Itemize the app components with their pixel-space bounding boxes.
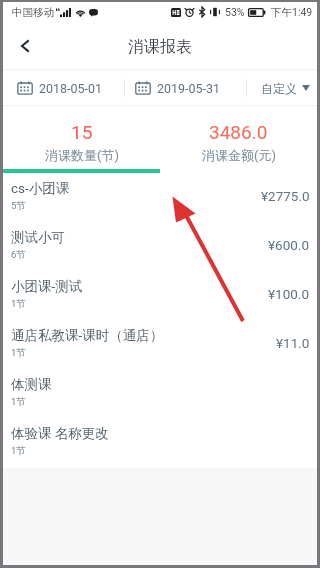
staticText: ¥100.0 [268, 286, 310, 302]
staticText: 3486.0 [209, 121, 268, 143]
staticText: 53% [225, 6, 245, 18]
button[interactable]: 体验课 名称更改 [3, 419, 317, 468]
button[interactable]: 体测课 [3, 370, 317, 419]
button[interactable]: 2019-05-31 [125, 70, 246, 106]
staticText: 2019-05-31 [157, 81, 221, 96]
staticText: 1节 [11, 445, 26, 457]
staticText: 体测课 [11, 376, 52, 393]
staticText: 下午1:49 [271, 6, 313, 19]
staticText: 小团课-测试 [11, 278, 83, 295]
staticText: 消课报表 [128, 37, 192, 57]
staticText: 测试小可 [11, 229, 65, 246]
staticText: 自定义 [261, 81, 297, 96]
button[interactable]: 2018-05-01 [3, 70, 124, 106]
button[interactable]: 15 [3, 106, 160, 173]
staticText: 1节 [11, 347, 26, 359]
button[interactable]: 通店私教课-课时（通店） [3, 321, 317, 370]
staticText: ¥11.0 [276, 335, 310, 351]
staticText: 1节 [11, 298, 26, 310]
staticText: cs-小团课 [11, 180, 70, 197]
staticText: 5节 [11, 200, 26, 212]
button[interactable]: Back [3, 24, 47, 68]
button[interactable]: cs-小团课 [3, 174, 317, 223]
staticText: 中国移动 [12, 6, 54, 19]
staticText: 15 [71, 121, 93, 143]
button[interactable]: 3486.0 [160, 106, 317, 173]
staticText: 2018-05-01 [39, 81, 103, 96]
staticText: ¥2775.0 [261, 188, 310, 204]
staticText: 体验课 名称更改 [11, 425, 109, 442]
button[interactable]: 测试小可 [3, 223, 317, 272]
staticText: 消课数量(节) [45, 147, 119, 163]
button[interactable]: 小团课-测试 [3, 272, 317, 321]
staticText: 消课金额(元) [202, 147, 276, 163]
staticText: 6节 [11, 249, 26, 261]
staticText: 通店私教课-课时（通店） [11, 327, 164, 344]
staticText: 1节 [11, 396, 26, 408]
button[interactable]: 自定义 [247, 70, 317, 106]
staticText: ¥600.0 [268, 237, 310, 253]
